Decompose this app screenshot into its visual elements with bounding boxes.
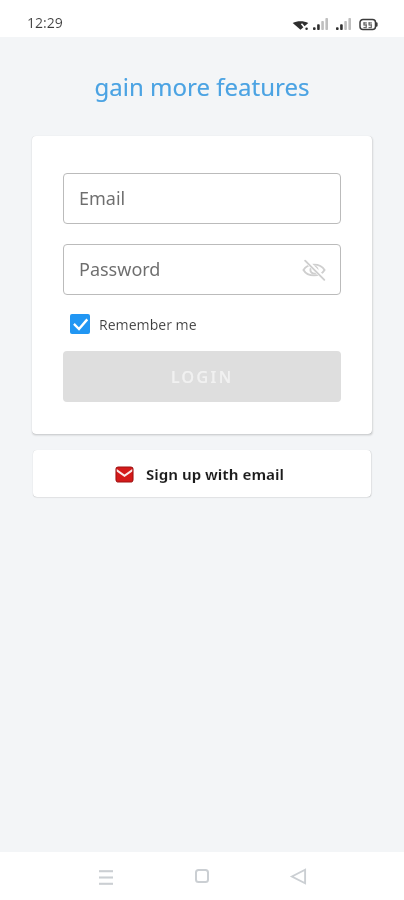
staticText: Email bbox=[79, 186, 126, 211]
staticText: gain more features bbox=[0, 70, 404, 103]
staticText: Sign up with email bbox=[146, 464, 285, 484]
button[interactable]: Remember me bbox=[70, 314, 197, 334]
staticText: Password bbox=[79, 257, 161, 282]
button[interactable]: Home bbox=[154, 852, 250, 900]
staticText: LOGIN bbox=[171, 366, 234, 388]
staticText: 12:29 bbox=[27, 13, 63, 32]
button[interactable]: Back bbox=[250, 852, 346, 900]
button[interactable]: Email bbox=[63, 173, 341, 224]
button[interactable]: Recent apps bbox=[58, 852, 154, 900]
button[interactable]: Password bbox=[63, 244, 341, 295]
staticText: Remember me bbox=[99, 315, 197, 334]
button[interactable]: Sign up with email bbox=[33, 450, 371, 497]
button[interactable]: Show password bbox=[299, 255, 329, 285]
